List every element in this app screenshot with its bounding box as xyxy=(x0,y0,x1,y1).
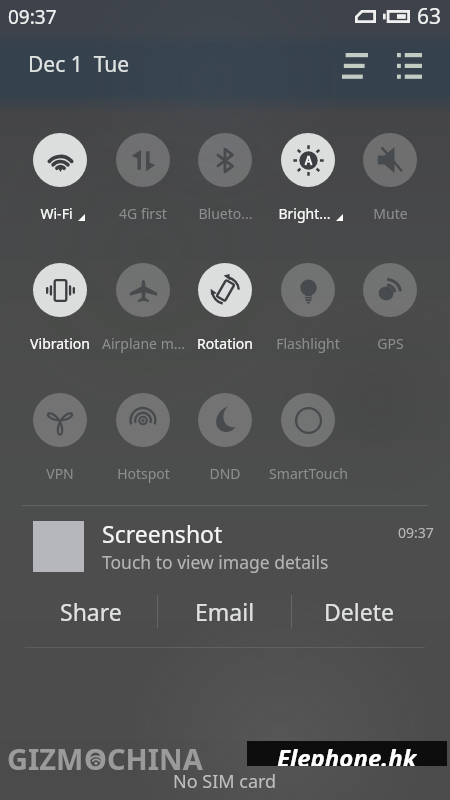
button[interactable]: Flashlight xyxy=(281,263,335,393)
staticText: Delete xyxy=(324,596,394,627)
staticText: Elephone.hk xyxy=(277,741,417,766)
staticText: Bright... xyxy=(278,204,331,223)
staticText: 63 xyxy=(417,2,442,31)
button[interactable]: Mute xyxy=(363,133,417,263)
button[interactable]: Notifications xyxy=(387,43,431,87)
staticText: Airplane m... xyxy=(102,334,185,353)
staticText: Blueto... xyxy=(198,204,253,223)
staticText: Touch to view image details xyxy=(102,550,329,574)
staticText: 09:37 xyxy=(398,523,434,542)
staticText: Mute xyxy=(373,204,408,223)
staticText: VPN xyxy=(46,464,74,483)
staticText: Rotation xyxy=(197,334,253,353)
button[interactable]: Hotspot xyxy=(116,393,170,505)
button[interactable]: SmartTouch xyxy=(281,393,335,505)
button[interactable]: Delete xyxy=(292,586,425,637)
staticText: Hotspot xyxy=(117,464,170,483)
button[interactable]: Airplane m... xyxy=(116,263,170,393)
staticText: O xyxy=(84,739,107,778)
staticText: GIZM xyxy=(7,739,84,778)
button[interactable]: Blueto... xyxy=(198,133,252,263)
staticText: SmartTouch xyxy=(269,464,348,483)
staticText: Flashlight xyxy=(276,334,340,353)
staticText: Wi-Fi xyxy=(40,204,73,223)
button[interactable]: Quick settings xyxy=(333,43,377,87)
button[interactable]: VPN xyxy=(33,393,87,505)
staticText: CHINA xyxy=(107,739,203,778)
staticText: Share xyxy=(60,596,122,627)
button[interactable]: Rotation xyxy=(198,263,252,393)
staticText: DND xyxy=(209,464,241,483)
button[interactable]: Vibration xyxy=(33,263,87,393)
button[interactable]: Email xyxy=(158,586,291,637)
button[interactable]: Share xyxy=(25,586,157,637)
button[interactable]: GPS xyxy=(363,263,417,393)
staticText: 4G first xyxy=(119,204,167,223)
staticText: Email xyxy=(195,596,255,627)
button[interactable]: Wi-Fi xyxy=(33,133,87,263)
button[interactable]: DND xyxy=(198,393,252,505)
staticText: 09:37 xyxy=(8,4,57,30)
button[interactable]: 4G first xyxy=(116,133,170,263)
staticText: No SIM card xyxy=(173,769,277,794)
button[interactable]: Screenshot xyxy=(0,506,450,586)
staticText: Screenshot xyxy=(102,518,223,549)
staticText: GPS xyxy=(377,334,404,353)
staticText: Dec 1 Tue xyxy=(28,50,130,79)
button[interactable]: Bright... xyxy=(281,133,335,263)
staticText: Vibration xyxy=(30,334,90,353)
